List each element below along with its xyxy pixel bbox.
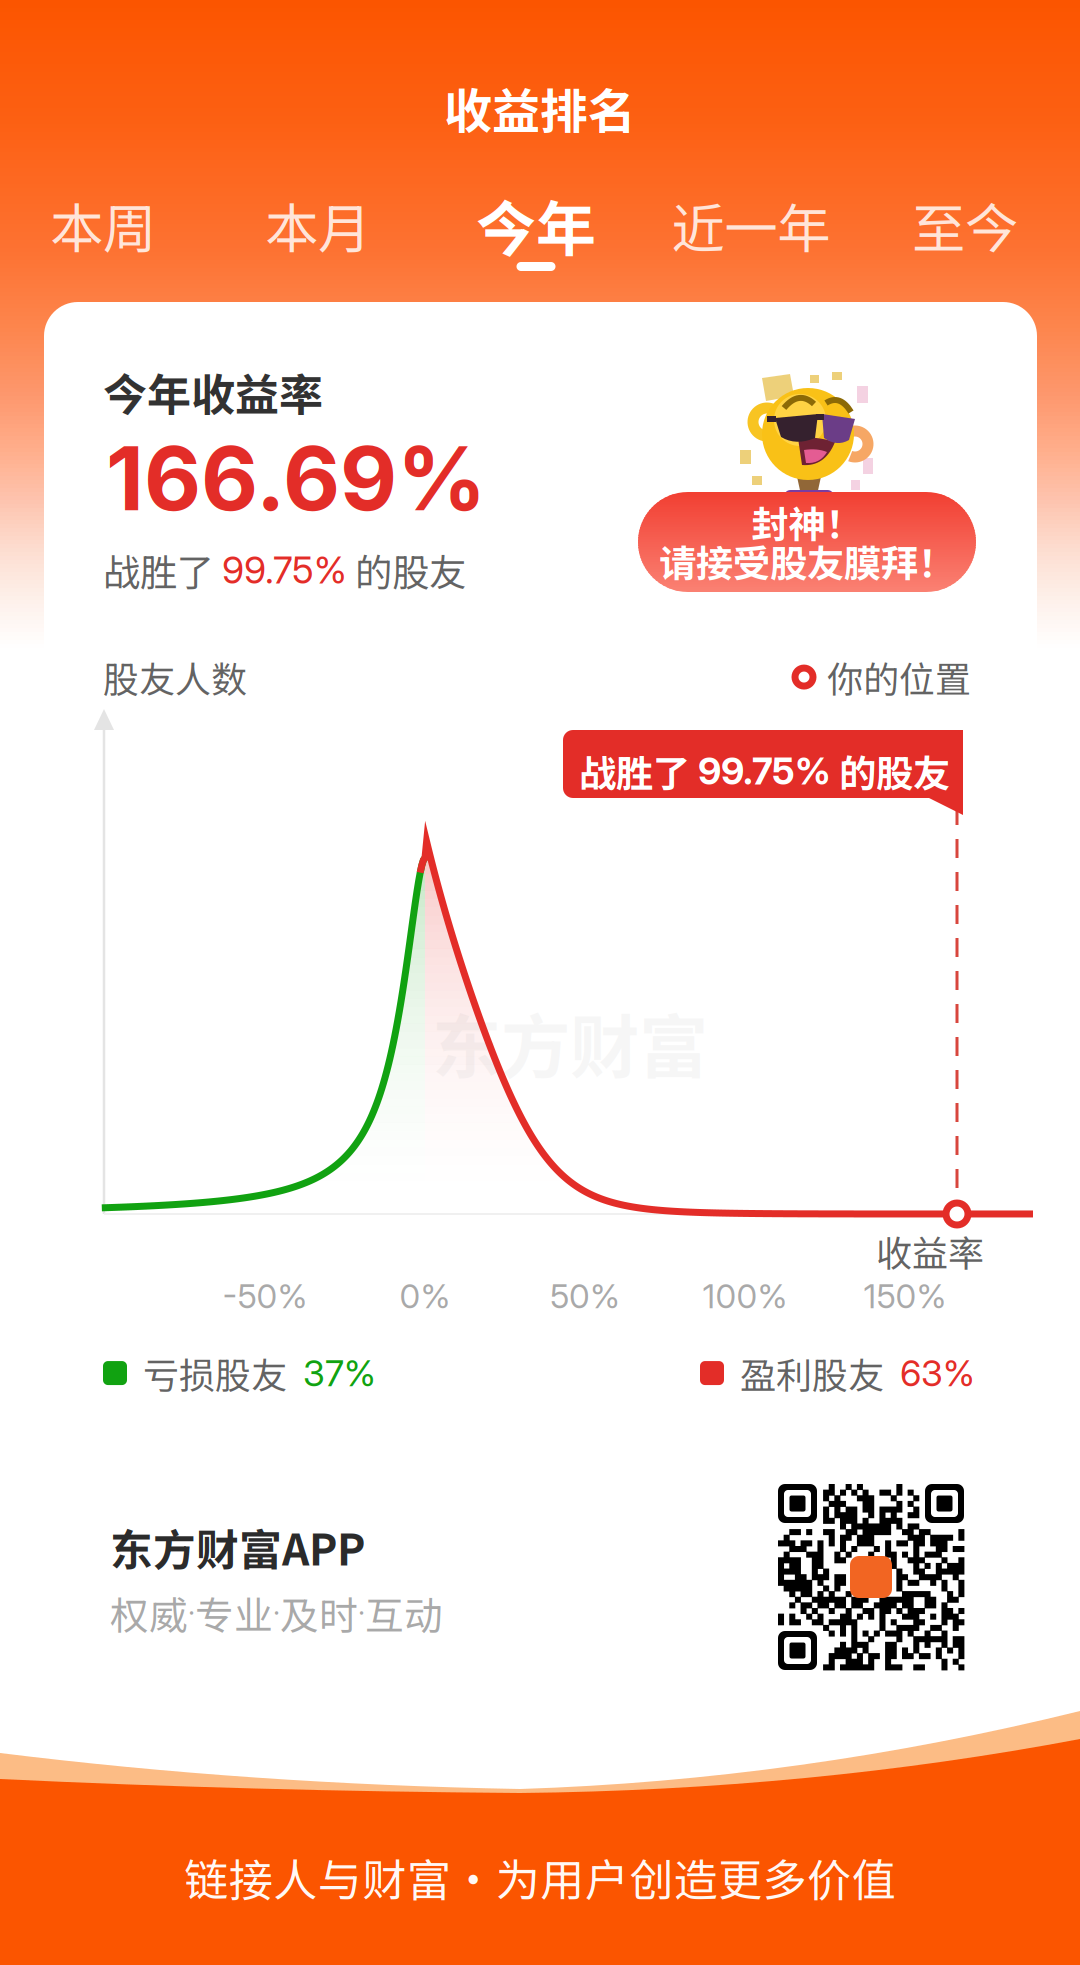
staticText: 链接人与财富·为用户创造更多价值: [184, 1845, 896, 1909]
staticText: 的股友: [831, 744, 950, 798]
button[interactable]: 收益排名: [0, 80, 1080, 136]
staticText: 50%: [550, 1276, 620, 1316]
staticText: 封神！: [751, 495, 862, 549]
staticText: 63%: [900, 1351, 975, 1395]
staticText: 99.75%: [698, 748, 831, 794]
staticText: ·: [188, 1597, 195, 1629]
staticText: 99.75%: [222, 547, 347, 593]
staticText: 专业: [195, 1585, 273, 1641]
button[interactable]: 本周: [0, 196, 208, 286]
staticText: 权威: [110, 1585, 188, 1641]
staticText: 及时: [280, 1585, 358, 1641]
staticText: 近一年: [671, 186, 830, 264]
staticText: 收益率: [876, 1225, 984, 1277]
staticText: -50%: [222, 1276, 307, 1316]
staticText: 今年: [476, 182, 596, 268]
staticText: 东方财富APP: [110, 1516, 365, 1578]
staticText: 本周: [50, 186, 156, 264]
button[interactable]: 本月: [213, 196, 423, 286]
staticText: 你的位置: [827, 651, 971, 703]
staticText: 至今: [912, 186, 1018, 264]
staticText: 东方财富: [432, 992, 708, 1092]
staticText: 150%: [863, 1276, 946, 1316]
staticText: 今年收益率: [103, 360, 323, 424]
staticText: 战胜了: [103, 543, 222, 597]
staticText: ·: [358, 1597, 365, 1629]
staticText: 战胜了: [579, 744, 698, 798]
staticText: ·: [273, 1597, 280, 1629]
staticText: 100%: [702, 1276, 787, 1316]
staticText: 37%: [303, 1351, 376, 1395]
staticText: 亏损股友: [143, 1347, 287, 1399]
staticText: 盈利股友: [740, 1347, 884, 1399]
staticText: 0%: [399, 1276, 450, 1316]
staticText: 股友人数: [103, 651, 247, 703]
button[interactable]: 至今: [860, 196, 1070, 286]
button[interactable]: 近一年: [646, 196, 856, 286]
staticText: 166.69%: [106, 425, 486, 531]
staticText: 互动: [365, 1585, 443, 1641]
button[interactable]: 今年: [431, 196, 641, 286]
staticText: 请接受股友膜拜！: [659, 534, 955, 588]
staticText: 收益排名: [444, 73, 636, 143]
staticText: 的股友: [347, 543, 466, 597]
staticText: 本月: [265, 186, 371, 264]
